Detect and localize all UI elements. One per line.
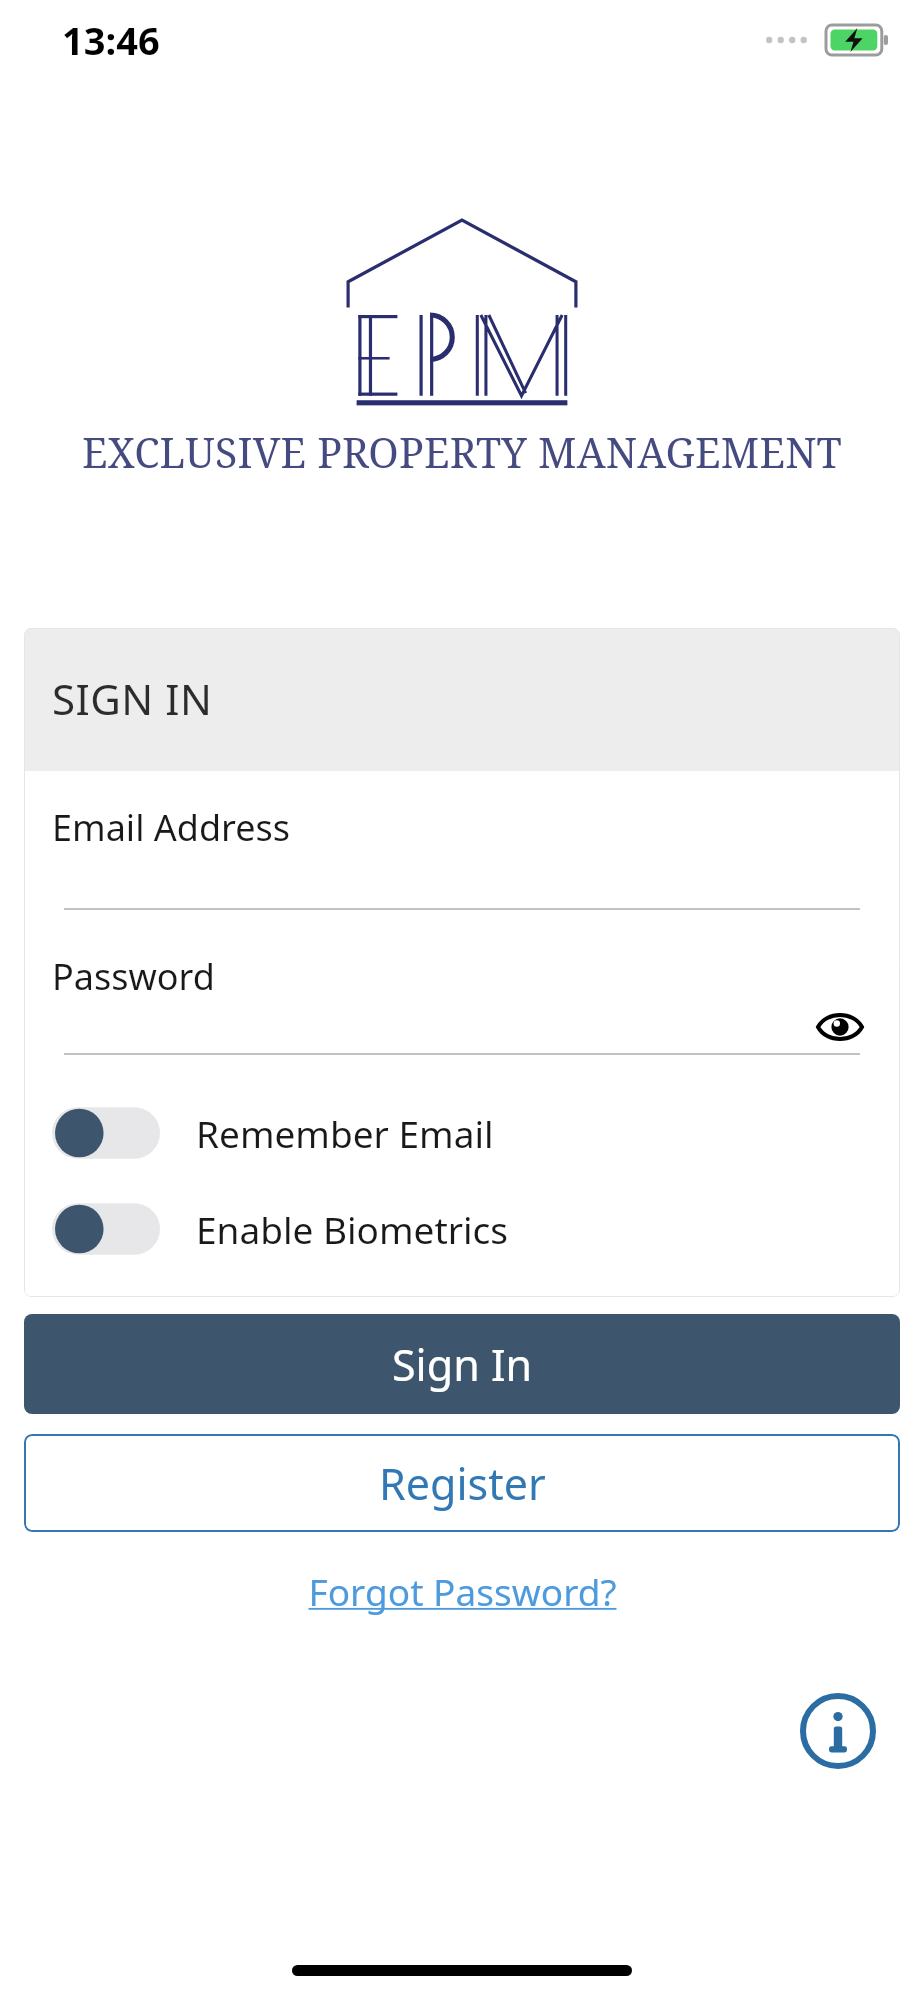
button[interactable]: Information xyxy=(794,1687,882,1775)
staticText: SIGN IN xyxy=(52,670,213,727)
staticText: Password xyxy=(52,952,215,1001)
button[interactable]: Register xyxy=(24,1434,900,1532)
button[interactable]: Show password xyxy=(808,1001,872,1053)
staticText: Enable Biometrics xyxy=(196,1204,509,1254)
staticText: Forgot Password? xyxy=(308,1566,617,1616)
staticText: Email Address xyxy=(52,803,291,852)
staticText: EXCLUSIVE PROPERTY MANAGEMENT xyxy=(82,424,842,480)
staticText: 13:46 xyxy=(62,14,160,66)
staticText: Remember Email xyxy=(196,1108,494,1158)
button[interactable]: Enable Biometrics xyxy=(52,1195,872,1263)
button[interactable]: Sign In xyxy=(24,1314,900,1414)
staticText: Sign In xyxy=(392,1335,533,1394)
button[interactable]: Forgot Password? xyxy=(298,1556,627,1626)
button[interactable]: Remember Email xyxy=(52,1099,872,1167)
staticText: Register xyxy=(379,1454,546,1513)
